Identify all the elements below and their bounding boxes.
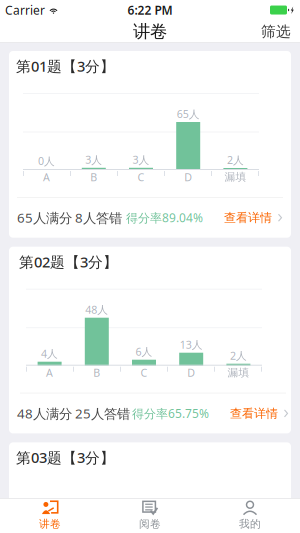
button[interactable]: 讲卷 (0, 498, 100, 533)
staticText: 65人 (177, 107, 200, 121)
staticText: C (140, 366, 147, 380)
staticText: 65人满分 8人答错 (17, 209, 122, 226)
button[interactable]: 48人满分 25人答错 (9, 393, 297, 433)
staticText: 得分率65.75% (132, 405, 209, 421)
staticText: 48人满分 25人答错 (17, 404, 130, 422)
staticText: C (137, 170, 144, 184)
button[interactable]: 65人满分 8人答错 (9, 198, 291, 238)
staticText: 筛选 (261, 22, 291, 40)
staticText: 3人 (85, 153, 102, 167)
staticText: 6:22 PM (127, 2, 172, 18)
staticText: 查看详情 (224, 210, 272, 225)
staticText: 第02题【3分】 (19, 252, 118, 271)
staticText: B (90, 170, 97, 184)
staticText: 得分率89.04% (126, 210, 203, 226)
staticText: D (187, 366, 195, 380)
staticText: 第01题【3分】 (16, 56, 115, 76)
button[interactable]: 筛选 (252, 19, 300, 43)
staticText: 0人 (38, 154, 55, 168)
button[interactable]: 我的 (200, 498, 300, 533)
button[interactable]: 阅卷 (100, 498, 200, 533)
staticText: 2人 (230, 348, 247, 363)
staticText: D (184, 170, 192, 184)
staticText: 2人 (227, 153, 244, 167)
staticText: 漏填 (224, 170, 246, 183)
staticText: 48人 (85, 302, 108, 317)
staticText: 查看详情 (230, 406, 278, 421)
staticText: 6人 (135, 344, 152, 359)
staticText: 讲卷 (133, 21, 167, 42)
staticText: 第03题【3分】 (16, 448, 115, 467)
staticText: 我的 (239, 517, 261, 530)
staticText: A (46, 366, 53, 380)
staticText: Carrier (5, 2, 45, 18)
staticText: 13人 (180, 337, 203, 352)
staticText: 漏填 (227, 366, 249, 379)
staticText: 4人 (41, 346, 58, 361)
staticText: 3人 (132, 153, 149, 167)
staticText: A (43, 170, 50, 184)
staticText: 阅卷 (139, 517, 161, 530)
staticText: 讲卷 (39, 517, 61, 530)
staticText: B (93, 366, 100, 380)
